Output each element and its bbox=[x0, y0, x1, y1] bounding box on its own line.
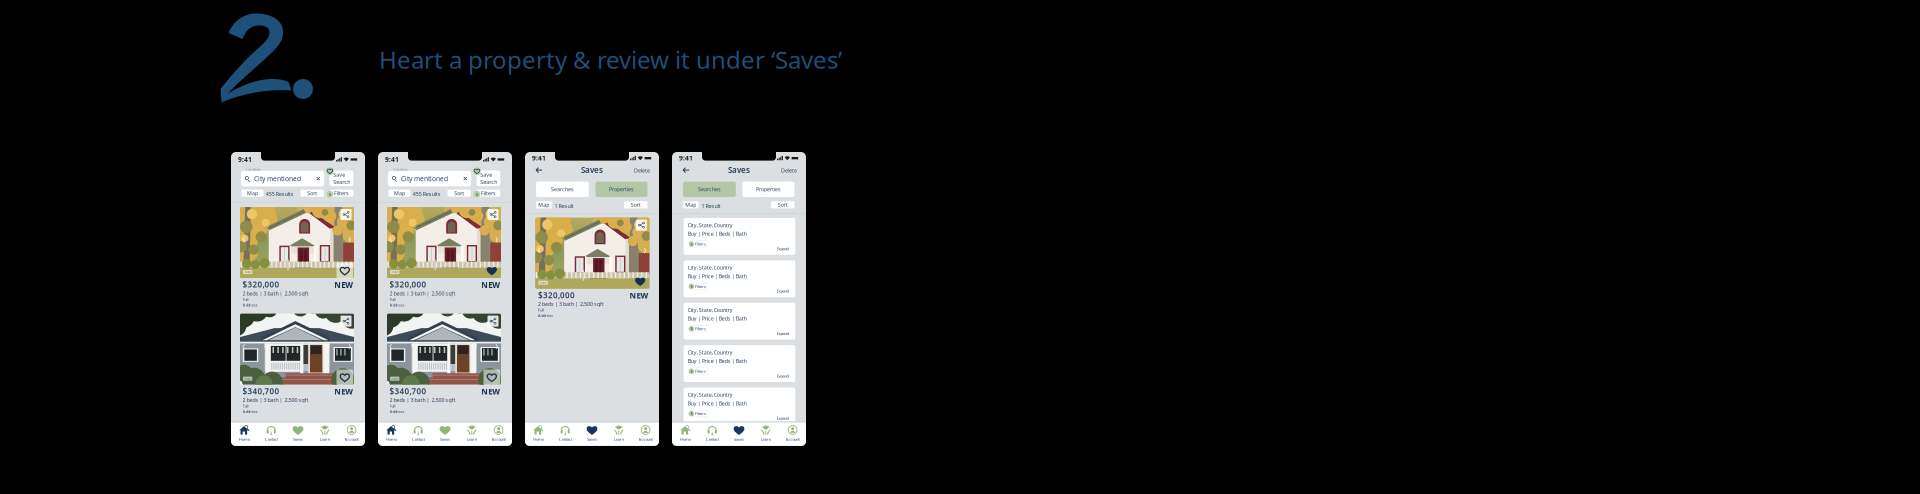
button[interactable]: Delete bbox=[633, 166, 651, 175]
staticText: Saves bbox=[728, 165, 750, 175]
staticText: Address bbox=[243, 409, 258, 414]
staticText: Heart a property & review it under ‘Save… bbox=[379, 43, 842, 75]
staticText: Properties bbox=[756, 186, 781, 193]
button[interactable]: Home bbox=[525, 424, 552, 446]
staticText: NEW bbox=[334, 280, 353, 290]
button[interactable]: City, State, Country bbox=[684, 260, 795, 297]
staticText: 9:41 bbox=[679, 154, 693, 162]
button[interactable]: Learn bbox=[752, 424, 779, 446]
button[interactable]: Save property bbox=[336, 263, 353, 278]
staticText: 1/33 bbox=[244, 270, 251, 274]
staticText: Contact bbox=[412, 437, 425, 442]
staticText: NEW bbox=[481, 386, 500, 397]
staticText: Full bbox=[243, 403, 249, 409]
button[interactable]: Saves bbox=[285, 424, 311, 446]
button[interactable]: Account bbox=[338, 424, 365, 446]
staticText: Buy | Price | Beds | Bath bbox=[688, 315, 747, 322]
button[interactable]: Share bbox=[636, 220, 647, 231]
button[interactable]: Contact bbox=[699, 424, 726, 446]
button[interactable]: Sort bbox=[447, 190, 471, 197]
button[interactable]: Learn bbox=[605, 424, 632, 446]
button[interactable]: Home bbox=[378, 424, 405, 446]
button[interactable]: Sort bbox=[300, 190, 324, 197]
staticText: Sort bbox=[454, 190, 464, 197]
button[interactable]: Map bbox=[683, 201, 698, 208]
button[interactable]: City mentioned bbox=[388, 171, 471, 186]
button[interactable]: Save bbox=[477, 170, 500, 186]
button[interactable]: Sort bbox=[771, 201, 794, 208]
staticText: 9:41 bbox=[238, 155, 252, 164]
staticText: 1/33 bbox=[391, 270, 398, 274]
button[interactable]: Sort bbox=[624, 201, 647, 208]
staticText: 9:41 bbox=[385, 155, 399, 164]
button[interactable]: Map bbox=[241, 190, 264, 197]
button[interactable]: Map bbox=[388, 190, 411, 197]
button[interactable]: Delete bbox=[780, 166, 798, 175]
button[interactable]: Learn bbox=[311, 424, 338, 446]
button[interactable]: Properties bbox=[595, 182, 647, 197]
staticText: Saves bbox=[587, 437, 597, 442]
staticText: 1 Result bbox=[554, 202, 573, 210]
staticText: Delete bbox=[634, 167, 650, 174]
staticText: City mentioned bbox=[401, 174, 448, 183]
staticText: Buy | Price | Beds | Bath bbox=[688, 357, 747, 364]
staticText: Filters bbox=[334, 190, 349, 197]
button[interactable]: Searches bbox=[683, 182, 736, 197]
button[interactable]: City, State, Country bbox=[684, 218, 795, 255]
staticText: Filters bbox=[695, 368, 706, 374]
button[interactable]: Save property bbox=[483, 369, 500, 385]
staticText: 2 beds | 3 bath | 2,500 sqft bbox=[390, 396, 456, 404]
button[interactable]: Contact bbox=[552, 424, 579, 446]
button[interactable]: Properties bbox=[742, 182, 794, 197]
staticText: 2 beds | 3 bath | 2,500 sqft bbox=[243, 290, 309, 297]
staticText: Saves bbox=[293, 437, 303, 442]
staticText: City, State, Country bbox=[688, 264, 733, 271]
staticText: Save bbox=[480, 171, 492, 178]
button[interactable]: Share bbox=[487, 316, 498, 327]
button[interactable]: Back bbox=[534, 165, 544, 175]
staticText: 5 bbox=[690, 368, 692, 374]
staticText: Buy | Price | Beds | Bath bbox=[688, 273, 747, 280]
button[interactable]: Share bbox=[340, 316, 351, 327]
button[interactable]: Save property bbox=[483, 263, 500, 278]
button[interactable]: Share bbox=[487, 209, 498, 220]
button[interactable]: Map bbox=[536, 201, 551, 208]
staticText: Filters bbox=[695, 326, 706, 331]
staticText: 455 Results bbox=[413, 190, 441, 197]
staticText: 2 beds | 3 bath | 2,500 sqft bbox=[390, 290, 456, 297]
button[interactable]: Home bbox=[231, 424, 258, 446]
button[interactable]: Save property bbox=[632, 273, 648, 289]
button[interactable]: City mentioned bbox=[241, 171, 324, 186]
staticText: Full bbox=[390, 403, 396, 409]
button[interactable]: Saves bbox=[432, 424, 458, 446]
button[interactable]: Account bbox=[485, 424, 512, 446]
staticText: Sort bbox=[778, 201, 788, 208]
button[interactable]: Save bbox=[330, 170, 353, 186]
button[interactable]: Learn bbox=[458, 424, 485, 446]
button[interactable]: Filters bbox=[330, 190, 353, 197]
button[interactable]: Share bbox=[340, 209, 351, 220]
staticText: Full bbox=[538, 307, 544, 313]
button[interactable]: Contact bbox=[405, 424, 432, 446]
button[interactable]: Filters bbox=[477, 190, 500, 197]
button[interactable]: Saves bbox=[726, 424, 752, 446]
staticText: 1/33 bbox=[391, 377, 398, 380]
staticText: Expand bbox=[777, 416, 789, 421]
staticText: City, State, Country bbox=[688, 349, 733, 356]
button[interactable]: Back bbox=[681, 165, 691, 175]
staticText: Map bbox=[538, 201, 549, 208]
staticText: Address bbox=[390, 302, 405, 307]
staticText: City mentioned bbox=[254, 174, 301, 183]
button[interactable]: Searches bbox=[536, 182, 589, 197]
button[interactable]: Contact bbox=[258, 424, 285, 446]
button[interactable]: Save property bbox=[336, 369, 353, 385]
staticText: $320,000 bbox=[390, 279, 427, 290]
button[interactable]: Account bbox=[779, 424, 806, 446]
button[interactable]: City, State, Country bbox=[684, 388, 795, 424]
button[interactable]: Saves bbox=[579, 424, 605, 446]
button[interactable]: Account bbox=[632, 424, 659, 446]
staticText: Address bbox=[538, 313, 553, 318]
button[interactable]: City, State, Country bbox=[684, 345, 795, 382]
button[interactable]: City, State, Country bbox=[684, 303, 795, 340]
button[interactable]: Home bbox=[672, 424, 699, 446]
